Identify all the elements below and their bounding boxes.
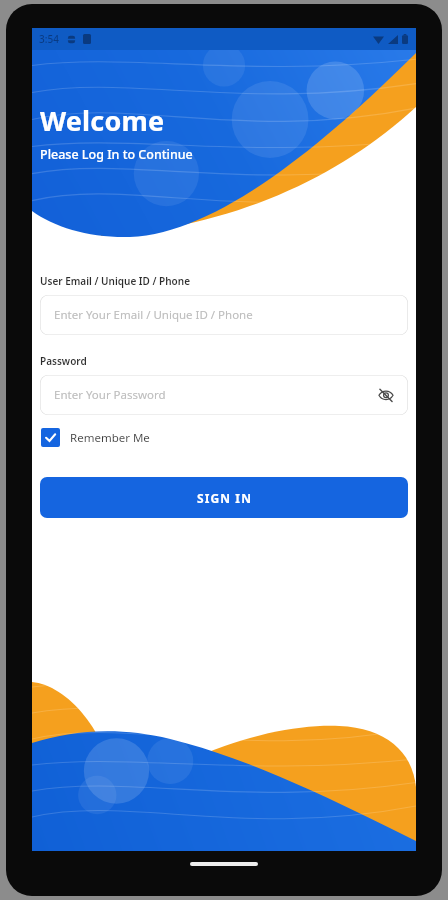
staticText: Password <box>40 354 87 368</box>
staticText: 3:54 <box>39 32 59 46</box>
staticText: SIGN IN <box>197 490 252 506</box>
staticText: User Email / Unique ID / Phone <box>40 274 190 288</box>
button[interactable]: Show password <box>376 385 396 405</box>
staticText: Enter Your Password <box>54 387 166 403</box>
button[interactable]: SIGN IN <box>40 477 408 518</box>
staticText: Remember Me <box>70 430 150 446</box>
button[interactable]: Enter Your Password <box>40 375 408 415</box>
staticText: Welcome <box>40 102 165 139</box>
button[interactable]: Enter Your Email / Unique ID / Phone <box>40 295 408 335</box>
staticText: Please Log In to Continue <box>40 146 193 163</box>
staticText: Enter Your Email / Unique ID / Phone <box>54 307 253 323</box>
button[interactable]: Remember Me <box>40 424 151 451</box>
